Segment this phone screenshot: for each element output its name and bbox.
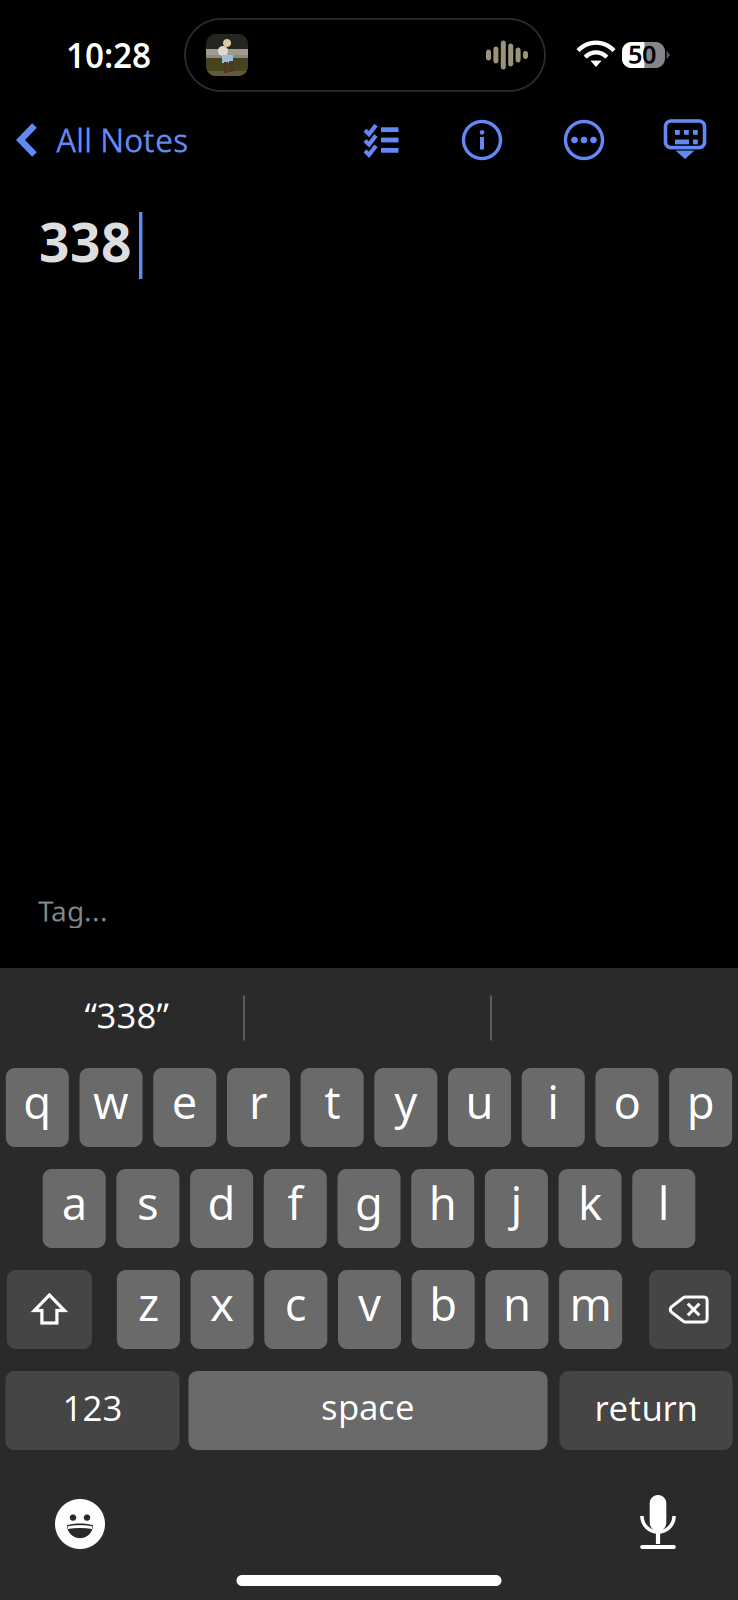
button[interactable]: Delete <box>649 1270 731 1349</box>
staticText: Tag... <box>38 892 108 929</box>
staticText: 338 <box>39 206 132 277</box>
button[interactable]: x <box>191 1270 254 1349</box>
staticText: “338” <box>84 992 168 1038</box>
staticText: i <box>547 1071 559 1132</box>
staticText: 50 <box>628 37 656 71</box>
staticText: p <box>687 1071 715 1132</box>
staticText: n <box>503 1273 531 1334</box>
staticText: a <box>62 1172 87 1233</box>
staticText: h <box>429 1172 457 1233</box>
staticText: m <box>570 1273 612 1334</box>
button[interactable]: c <box>264 1270 327 1349</box>
button[interactable]: space <box>188 1371 547 1450</box>
staticText: r <box>249 1071 268 1132</box>
staticText: k <box>578 1172 602 1233</box>
staticText: v <box>358 1273 381 1334</box>
staticText: return <box>594 1384 697 1430</box>
button[interactable]: 123 <box>5 1371 179 1450</box>
button[interactable]: n <box>485 1270 548 1349</box>
button[interactable]: q <box>6 1068 69 1147</box>
staticText: o <box>613 1071 640 1132</box>
staticText: l <box>658 1172 670 1233</box>
button[interactable]: f <box>264 1169 327 1248</box>
button[interactable]: w <box>80 1068 143 1147</box>
button[interactable]: Checklist <box>345 104 417 176</box>
button[interactable]: “338” <box>0 981 243 1055</box>
button[interactable]: Emoji <box>32 1450 128 1546</box>
button[interactable]: p <box>669 1068 732 1147</box>
button[interactable]: d <box>190 1169 253 1248</box>
staticText: c <box>285 1273 307 1334</box>
staticText: 123 <box>62 1384 122 1430</box>
button[interactable]: j <box>485 1169 548 1248</box>
staticText: d <box>208 1172 236 1233</box>
staticText: g <box>355 1172 383 1233</box>
button[interactable]: Shift <box>7 1270 92 1349</box>
button[interactable]: u <box>448 1068 511 1147</box>
button[interactable]: g <box>337 1169 400 1248</box>
button[interactable]: r <box>227 1068 290 1147</box>
button[interactable]: o <box>595 1068 658 1147</box>
button[interactable]: k <box>559 1169 622 1248</box>
button[interactable]: z <box>117 1270 180 1349</box>
staticText: e <box>172 1071 198 1132</box>
button[interactable]: a <box>43 1169 106 1248</box>
staticText: All Notes <box>56 119 188 161</box>
staticText: q <box>23 1071 51 1132</box>
staticText: w <box>93 1071 129 1132</box>
button[interactable]: y <box>374 1068 437 1147</box>
staticText: 10:28 <box>66 33 151 77</box>
button[interactable]: v <box>338 1270 401 1349</box>
button[interactable]: e <box>153 1068 216 1147</box>
button[interactable]: m <box>559 1270 622 1349</box>
button[interactable]: Hide Keyboard <box>649 104 721 176</box>
button[interactable]: s <box>116 1169 179 1248</box>
button[interactable]: t <box>301 1068 364 1147</box>
button[interactable]: l <box>632 1169 695 1248</box>
button[interactable]: More <box>548 104 620 176</box>
button[interactable]: return <box>559 1371 732 1450</box>
staticText: s <box>137 1172 159 1233</box>
button[interactable]: b <box>412 1270 475 1349</box>
button[interactable]: h <box>411 1169 474 1248</box>
staticText: space <box>321 1383 415 1429</box>
staticText: z <box>138 1273 159 1334</box>
staticText: b <box>429 1273 457 1334</box>
staticText: t <box>324 1071 340 1132</box>
staticText: y <box>394 1071 417 1132</box>
staticText: u <box>466 1071 494 1132</box>
button[interactable]: Info <box>446 104 518 176</box>
button[interactable]: i <box>522 1068 585 1147</box>
staticText: j <box>510 1172 522 1233</box>
staticText: f <box>287 1172 303 1233</box>
button[interactable]: All Notes <box>0 104 200 176</box>
staticText: x <box>210 1273 234 1334</box>
button[interactable]: Dictate <box>610 1450 706 1546</box>
